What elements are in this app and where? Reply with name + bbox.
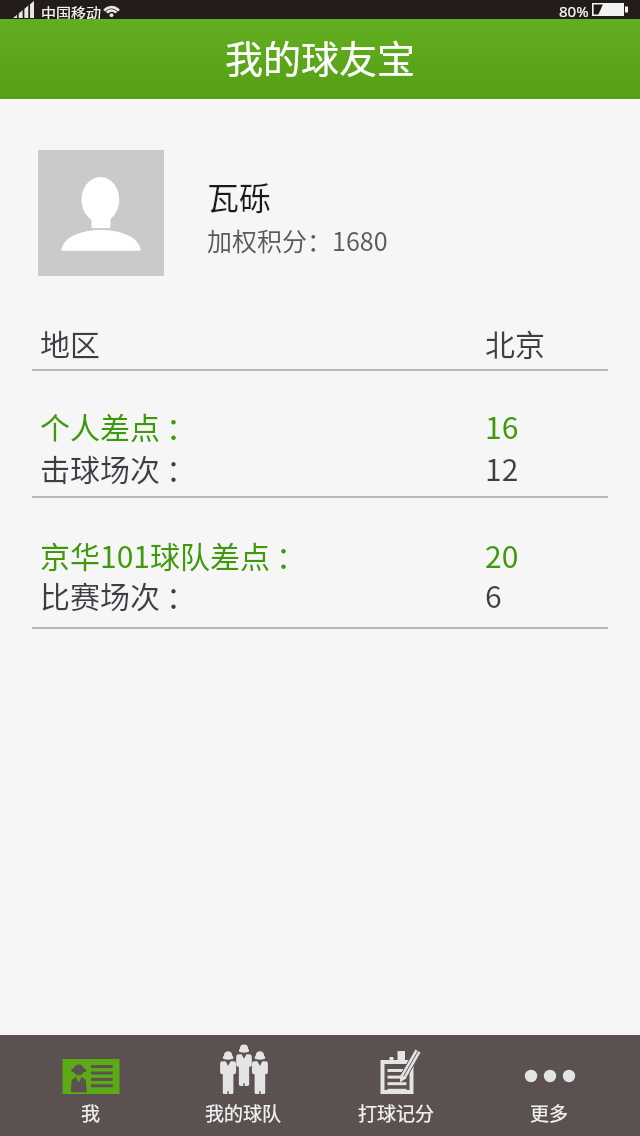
other: 更多 [520,1044,580,1094]
staticText: 京华101球队差点 ： [40,533,306,576]
staticText: 加权积分：1680 [207,222,388,258]
staticText: 更多 [530,1099,569,1127]
staticText: 我的球队 [205,1099,282,1127]
staticText: 80% [559,1,589,20]
staticText: 16 [485,404,519,447]
button[interactable]: 更多 [473,1035,626,1136]
other: 打球记分 [367,1044,427,1094]
button[interactable]: 我的球队 [167,1035,320,1136]
button[interactable]: 打球记分 [320,1035,473,1136]
staticText: 打球记分 [358,1099,435,1127]
staticText: 北京 [485,321,545,364]
staticText: 比赛场次 ： [40,573,196,616]
staticText: 我 [81,1099,101,1127]
staticText: 我的球友宝 [225,29,416,84]
other: 我的球队 [214,1044,274,1094]
staticText: 12 [485,446,519,489]
staticText: 个人差点 ： [40,404,196,447]
button[interactable]: 我 [14,1035,167,1136]
other: 我 [61,1044,121,1094]
staticText: 中国移动 [41,2,102,21]
staticText: 20 [485,533,519,576]
staticText: 击球场次 ： [40,446,196,489]
staticText: 地区 [40,321,100,364]
staticText: 6 [485,573,502,616]
staticText: 瓦砾 [207,173,272,219]
